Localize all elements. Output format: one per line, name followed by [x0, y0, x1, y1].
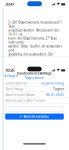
staticText: 10:25	[5, 67, 14, 73]
button[interactable]: Zurück	[0, 72, 18, 79]
staticText: Kundendienst-Anfrage	[17, 71, 52, 75]
staticText: Zurück	[7, 73, 18, 78]
staticText: 20:47	[5, 1, 14, 7]
staticText: Bericht erstellen	[23, 114, 49, 119]
button[interactable]: Bericht zum Datum	[0, 92, 69, 98]
staticText: 3. Der Dispensierung muss das auf 1 Tage…	[8, 20, 62, 80]
staticText: Dispensierung	[41, 81, 64, 85]
staticText: Tagnet	[53, 87, 64, 91]
button[interactable]: Bericht erstellen	[0, 111, 69, 120]
staticText: 06.01.2025	[46, 92, 64, 97]
staticText: Bericht zum Datum	[5, 92, 35, 97]
button[interactable]: Organisation	[25, 76, 44, 80]
staticText: Bericht per E-Mail senden	[5, 98, 46, 103]
staticText: Organisation	[25, 76, 44, 80]
button[interactable]: Erster Bericht	[0, 81, 69, 86]
button[interactable]: Berichttage	[0, 86, 69, 92]
button[interactable]: Bericht per E-Mail senden	[0, 98, 69, 103]
staticText: Berichttage	[5, 87, 23, 91]
staticText: Erster Bericht	[5, 81, 26, 85]
